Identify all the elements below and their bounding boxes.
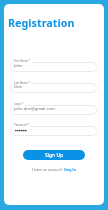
button[interactable]: Sign Up xyxy=(23,150,85,160)
button[interactable] xyxy=(10,126,97,136)
staticText: Password * xyxy=(14,123,29,127)
button[interactable]: Sing In xyxy=(64,167,77,172)
staticText: John xyxy=(14,63,23,69)
staticText: I have an account? xyxy=(32,167,64,172)
button[interactable]: john.doe@gmail.com xyxy=(10,105,97,115)
staticText: john.doe@gmail.com xyxy=(14,106,55,112)
staticText: Last Name * xyxy=(14,81,30,85)
staticText: Doe xyxy=(14,84,22,90)
staticText: Registration xyxy=(8,15,75,30)
button[interactable]: Doe xyxy=(10,83,97,93)
button[interactable]: John xyxy=(10,62,97,72)
staticText: Login * xyxy=(14,102,24,106)
staticText: First Name * xyxy=(14,59,31,63)
staticText: Sign Up xyxy=(45,152,64,159)
